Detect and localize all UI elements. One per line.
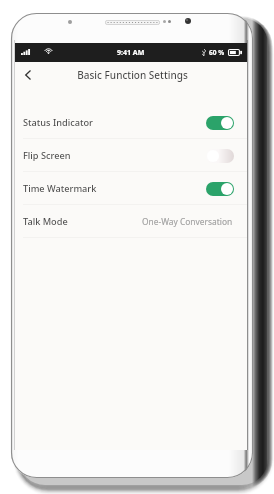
button[interactable]: Back [17, 64, 39, 86]
button[interactable]: Talk Mode [15, 205, 247, 238]
staticText: Basic Function Settings [77, 68, 188, 82]
button[interactable]: Flip Screen [15, 139, 247, 172]
staticText: Flip Screen [23, 149, 71, 162]
button[interactable]: Status Indicator [15, 106, 247, 139]
staticText: Status Indicator [23, 116, 93, 129]
staticText: Time Watermark [23, 182, 97, 195]
staticText: 60 % [209, 48, 225, 57]
button[interactable]: Time Watermark [15, 172, 247, 205]
staticText: Talk Mode [23, 215, 68, 228]
staticText: 9:41 AM [117, 48, 145, 58]
staticText: One-Way Conversation [142, 216, 233, 227]
